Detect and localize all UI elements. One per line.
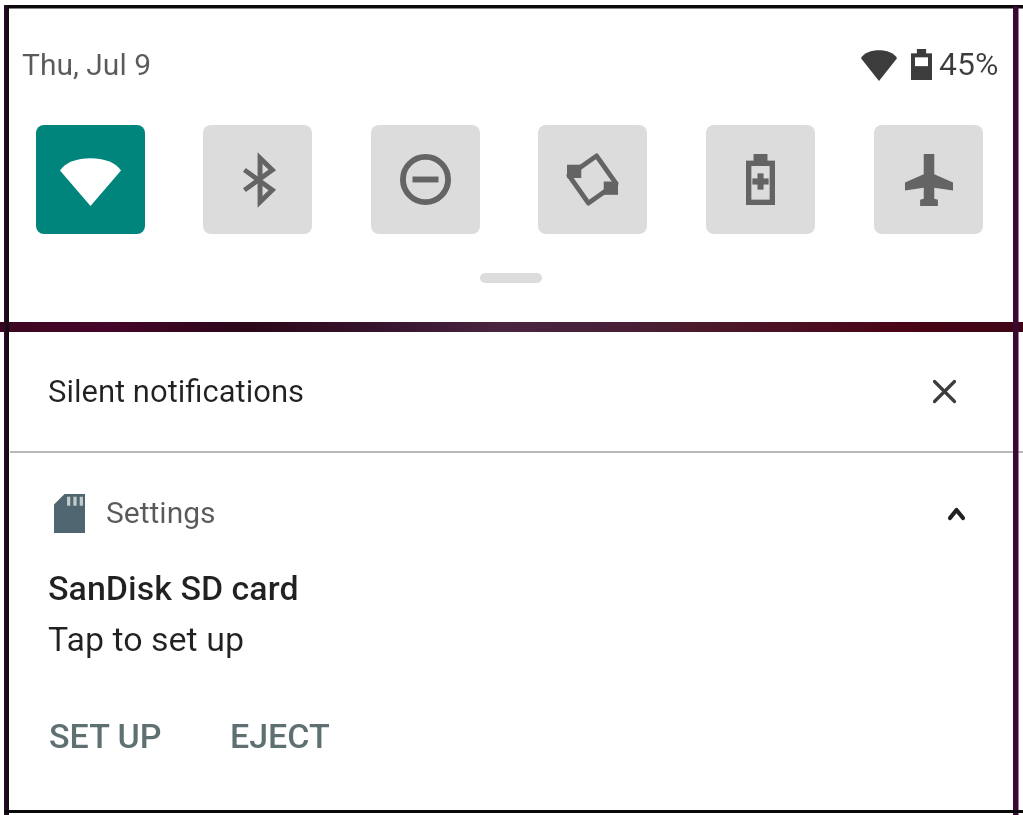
staticText: Silent notifications (48, 373, 305, 409)
button[interactable]: Wi-Fi (36, 125, 145, 234)
staticText: Tap to set up (48, 619, 245, 659)
button[interactable]: Collapse (926, 484, 986, 544)
staticText: EJECT (230, 716, 330, 756)
button[interactable]: Bluetooth (203, 125, 312, 234)
button[interactable]: Auto-rotate (538, 125, 647, 234)
button[interactable]: Settings (0, 453, 1023, 809)
button[interactable]: Airplane mode (874, 125, 983, 234)
button[interactable]: Expand quick settings (480, 273, 542, 283)
button[interactable]: Battery Saver (706, 125, 815, 234)
button[interactable]: Do Not Disturb (371, 125, 480, 234)
staticText: 45% (939, 45, 999, 79)
button[interactable]: Silent notifications (0, 332, 1023, 451)
staticText: Thu, Jul 9 (22, 47, 151, 82)
staticText: SET UP (49, 716, 162, 756)
staticText: SanDisk SD card (48, 568, 299, 608)
button[interactable]: EJECT (209, 704, 351, 768)
button[interactable]: SET UP (28, 704, 183, 768)
button[interactable]: Close (912, 359, 976, 423)
staticText: Settings (106, 495, 216, 530)
